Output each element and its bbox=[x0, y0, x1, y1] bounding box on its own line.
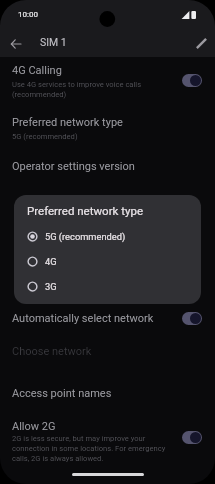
button[interactable] bbox=[0, 340, 215, 368]
button[interactable] bbox=[0, 382, 215, 410]
staticText: 3G bbox=[45, 281, 57, 292]
button[interactable]: Toggle bbox=[182, 431, 202, 444]
button[interactable] bbox=[0, 307, 215, 335]
button[interactable] bbox=[0, 413, 215, 465]
button[interactable]: Toggle bbox=[182, 312, 202, 325]
button[interactable]: 4G bbox=[14, 249, 201, 274]
button[interactable] bbox=[0, 60, 215, 100]
staticText: 4G bbox=[45, 256, 57, 267]
button[interactable] bbox=[0, 152, 215, 180]
staticText: 4G Calling bbox=[12, 64, 62, 77]
staticText: Access point names bbox=[12, 387, 112, 400]
staticText: Automatically select network bbox=[12, 312, 154, 325]
button[interactable]: Toggle bbox=[182, 74, 202, 87]
staticText: 5G (recommended) bbox=[12, 132, 78, 141]
staticText: Operator settings version bbox=[12, 160, 135, 173]
staticText: 2G is less secure, but may improve your … bbox=[12, 433, 166, 463]
staticText: Allow 2G bbox=[12, 420, 56, 433]
staticText: 10:00 bbox=[18, 10, 38, 19]
button[interactable]: 5G (recommended) bbox=[14, 224, 201, 249]
staticText: Choose network bbox=[12, 345, 92, 358]
button[interactable]: 3G bbox=[14, 274, 201, 299]
staticText: 5G (recommended) bbox=[45, 231, 126, 242]
button[interactable] bbox=[0, 110, 215, 148]
staticText: Preferred network type bbox=[12, 116, 123, 129]
staticText: SIM 1 bbox=[40, 36, 67, 48]
staticText: Use 4G services to improve voice calls (… bbox=[12, 79, 142, 99]
button[interactable]: Back bbox=[4, 32, 27, 55]
staticText: Preferred network type bbox=[27, 204, 143, 217]
button[interactable]: Edit bbox=[190, 32, 213, 55]
